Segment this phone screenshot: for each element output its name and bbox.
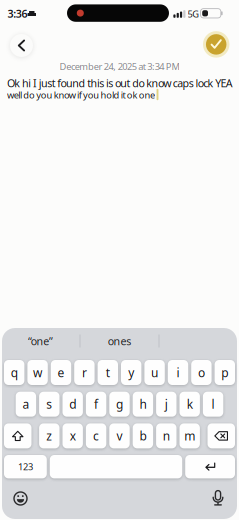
button[interactable]: Dictate	[209, 489, 227, 507]
button[interactable]: m	[179, 423, 200, 448]
button[interactable]: j	[156, 392, 176, 417]
button[interactable]: s	[39, 392, 59, 417]
staticText: 5G	[187, 8, 199, 20]
button[interactable]: 123	[4, 455, 47, 478]
button[interactable]: o	[191, 360, 212, 385]
button[interactable]: Back	[10, 34, 33, 57]
button[interactable]: c	[86, 423, 106, 448]
staticText: i	[176, 364, 179, 380]
button[interactable]: d	[62, 392, 83, 417]
staticText: l	[212, 396, 215, 412]
button[interactable]: Done	[203, 31, 230, 58]
button[interactable]: e	[51, 360, 71, 385]
button[interactable]: w	[27, 360, 48, 385]
staticText: e	[57, 364, 64, 380]
staticText: t	[106, 364, 110, 380]
button[interactable]: Shift	[4, 423, 31, 448]
staticText: ones	[108, 334, 131, 348]
button[interactable]: g	[109, 392, 130, 417]
staticText: f	[94, 396, 98, 412]
staticText: Ok hi I just found this is out do know c…	[7, 76, 233, 90]
staticText: o	[198, 364, 205, 380]
button[interactable]: x	[62, 423, 83, 448]
staticText: w	[33, 364, 42, 380]
staticText: h	[139, 396, 146, 412]
button[interactable]: k	[179, 392, 200, 417]
staticText: December 24, 2025 at 3:34 PM	[59, 60, 179, 73]
staticText: d	[69, 396, 76, 412]
staticText: q	[11, 364, 18, 380]
staticText: x	[70, 428, 76, 444]
staticText: a	[22, 396, 29, 412]
button[interactable]: Delete	[207, 423, 235, 448]
button[interactable]: v	[109, 423, 130, 448]
button[interactable]: l	[203, 392, 223, 417]
button[interactable]: p	[215, 360, 235, 385]
button[interactable]: y	[121, 360, 141, 385]
staticText: r	[82, 364, 87, 380]
button[interactable]: Return	[185, 455, 235, 478]
staticText: c	[93, 428, 99, 444]
staticText: m	[184, 428, 195, 444]
staticText: z	[46, 428, 52, 444]
button[interactable]: b	[133, 423, 153, 448]
staticText: 3:36	[7, 6, 27, 21]
button[interactable]: q	[4, 360, 24, 385]
staticText: s	[46, 396, 52, 412]
button[interactable]: n	[156, 423, 176, 448]
button[interactable]: i	[168, 360, 188, 385]
staticText: p	[221, 364, 228, 380]
button[interactable]: r	[74, 360, 95, 385]
staticText: 123	[18, 460, 33, 473]
staticText: v	[116, 428, 122, 444]
staticText: well do you know if you hold it ok one	[7, 89, 155, 101]
staticText: u	[151, 364, 158, 380]
staticText: b	[139, 428, 146, 444]
button[interactable]: ones	[81, 331, 157, 351]
staticText: g	[116, 396, 123, 412]
button[interactable]: “one”	[2, 331, 78, 351]
staticText: y	[128, 364, 134, 380]
button[interactable]: z	[39, 423, 59, 448]
button[interactable]: t	[98, 360, 118, 385]
button[interactable]: h	[133, 392, 153, 417]
button[interactable]: a	[16, 392, 36, 417]
staticText: k	[187, 396, 193, 412]
button[interactable]: Emoji	[12, 490, 28, 506]
staticText: j	[165, 396, 168, 412]
button[interactable]: u	[144, 360, 165, 385]
button[interactable]: f	[86, 392, 106, 417]
staticText: “one”	[28, 334, 53, 348]
staticText: n	[163, 428, 170, 444]
